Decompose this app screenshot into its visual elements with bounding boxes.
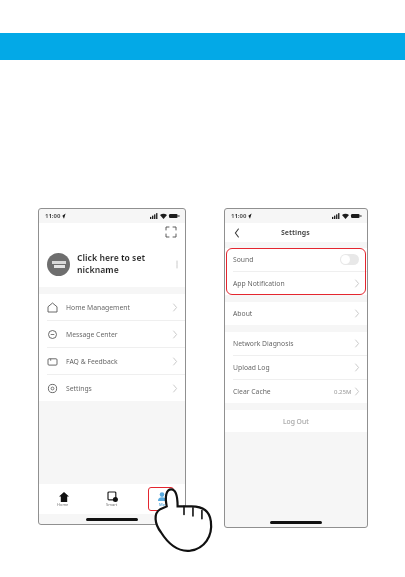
staticText: Network Diagnosis	[233, 339, 294, 348]
button[interactable]: Scan	[164, 225, 178, 239]
staticText: Upload Log	[233, 363, 270, 372]
button[interactable]: Home Management	[39, 294, 185, 320]
button[interactable]: Clear Cache	[225, 380, 367, 403]
button[interactable]: Smart	[99, 487, 125, 511]
staticText: 11:00	[231, 212, 247, 220]
button[interactable]: Log Out	[225, 410, 367, 432]
staticText: Smart	[106, 502, 118, 507]
staticText: Message Center	[66, 330, 118, 339]
staticText: 0.25M	[334, 388, 352, 396]
button[interactable]: Home	[50, 487, 76, 511]
staticText: Clear Cache	[233, 387, 271, 396]
staticText: Home Management	[66, 303, 130, 312]
button[interactable]: Me	[148, 487, 174, 511]
button[interactable]: About	[225, 302, 367, 325]
staticText: App Notification	[233, 279, 285, 288]
button[interactable]: Network Diagnosis	[225, 332, 367, 355]
staticText: FAQ & Feedback	[66, 357, 118, 366]
staticText: Me	[159, 502, 165, 507]
button[interactable]: App Notification	[225, 272, 367, 295]
staticText: 11:00	[45, 212, 61, 220]
staticText: Home	[57, 502, 69, 507]
staticText: Log Out	[283, 417, 309, 426]
button[interactable]: Back	[232, 228, 242, 238]
button[interactable]: Click here to set nickname	[39, 241, 185, 287]
button[interactable]: Message Center	[39, 321, 185, 347]
button[interactable]: Upload Log	[225, 356, 367, 379]
staticText: Settings	[281, 228, 310, 238]
staticText: Sound	[233, 255, 254, 264]
staticText: Click here to set nickname	[77, 252, 177, 276]
button[interactable]: Settings	[39, 375, 185, 401]
staticText: Settings	[66, 384, 92, 393]
button[interactable]	[340, 254, 359, 265]
staticText: About	[233, 309, 253, 318]
button[interactable]: FAQ & Feedback	[39, 348, 185, 374]
button[interactable]: Sound	[225, 248, 367, 271]
